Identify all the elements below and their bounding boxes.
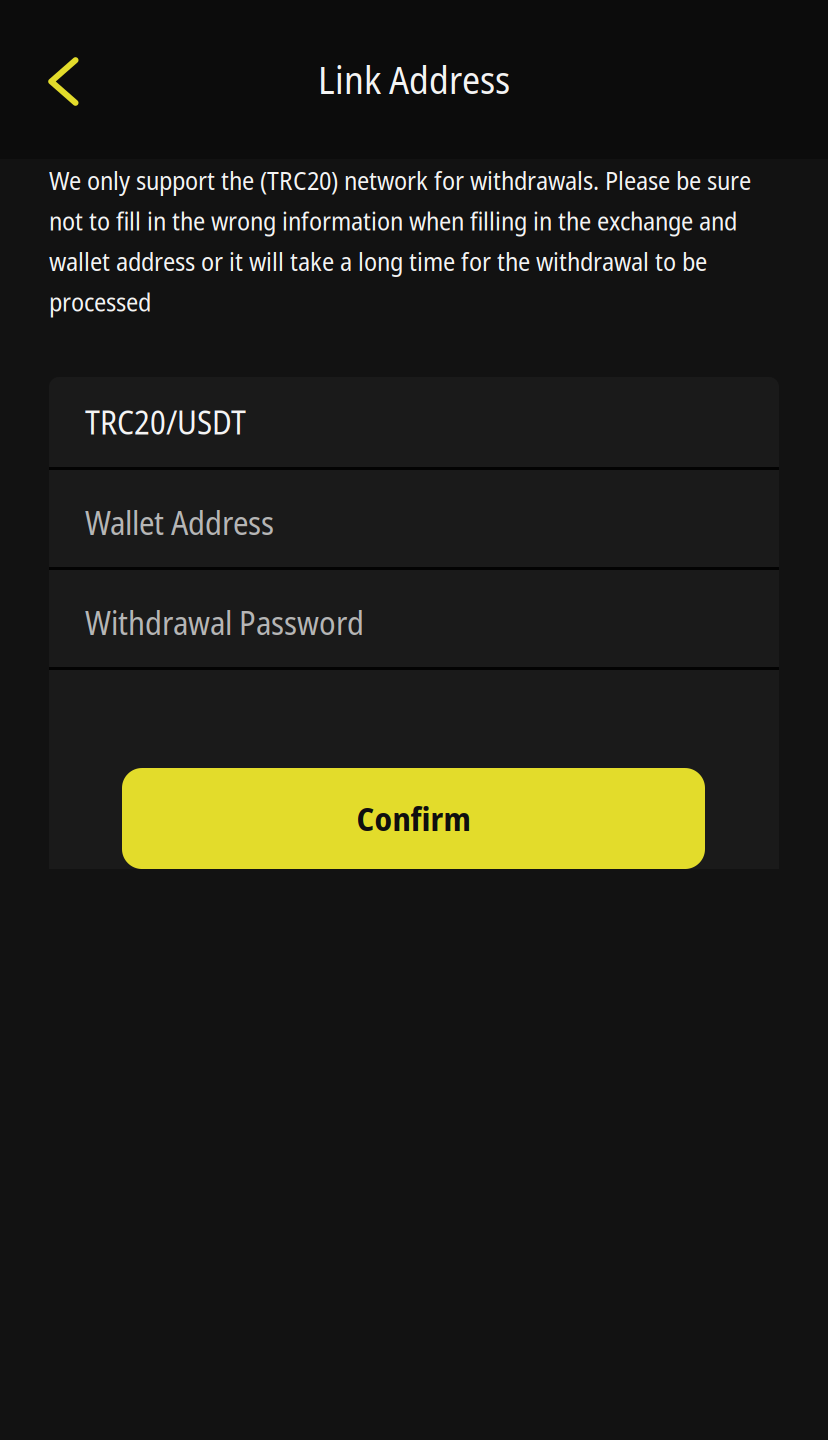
staticText: Confirm — [356, 797, 470, 840]
staticText: TRC20/USDT — [85, 400, 246, 444]
button[interactable]: Withdrawal Password — [49, 570, 779, 667]
button[interactable]: Wallet Address — [49, 470, 779, 567]
button[interactable]: TRC20/USDT — [49, 377, 779, 467]
button[interactable]: Confirm — [122, 768, 705, 869]
staticText: Wallet Address — [85, 501, 274, 544]
staticText: We only support the (TRC20) network for … — [49, 163, 751, 319]
button[interactable]: Back — [0, 0, 111, 159]
staticText: Link Address — [318, 54, 510, 105]
staticText: Withdrawal Password — [85, 601, 364, 644]
